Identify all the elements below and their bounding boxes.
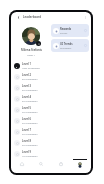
button[interactable]: Level 3 [14,82,89,93]
button[interactable]: Level 9 [14,148,89,159]
staticText: Level 2 [22,73,32,77]
button[interactable]: Home [14,159,30,166]
button[interactable]: Profile [72,159,88,166]
staticText: 4% of members [22,111,38,114]
staticText: 2% of members [22,144,38,147]
staticText: Rewards [60,27,72,31]
staticText: 5% of members [22,100,38,103]
staticText: In progress [60,47,72,50]
staticText: 8% of members [22,78,38,81]
button[interactable]: Level 6 [14,115,89,126]
button[interactable]: Saved [53,159,69,166]
staticText: Level 6 [22,117,32,121]
staticText: 320 pts [60,32,68,35]
button[interactable]: More options [83,15,88,20]
staticText: Level 4 [22,95,32,99]
button[interactable]: Level 2 [14,71,89,82]
staticText: Level 5 [22,106,32,110]
button[interactable]: Back [16,15,21,20]
staticText: 2% of members [22,133,38,136]
staticText: UI Trends [60,42,73,46]
staticText: Level 1 [22,62,32,66]
staticText: 3% of members [22,122,38,125]
button[interactable]: Level 7 [14,126,89,137]
staticText: 100% of members [22,67,40,70]
staticText: Level 9 [22,150,32,154]
staticText: Level 8 [22,139,32,143]
button[interactable]: Level 8 [14,137,89,148]
staticText: Milena Stefanis [21,48,42,52]
staticText: 6% of members [22,89,38,92]
staticText: 1 [16,65,18,68]
button[interactable]: 1 [14,60,89,71]
button[interactable]: Level 5 [14,104,89,115]
staticText: Level 1 [27,53,35,56]
staticText: Level 3 [22,84,32,88]
staticText: 1% of members [22,155,38,158]
button[interactable]: UI Trends [51,39,89,52]
staticText: Leaderboard [23,15,42,19]
button[interactable]: Level 4 [14,93,89,104]
button[interactable]: Search [33,159,49,166]
button[interactable]: Rewards [51,24,89,37]
staticText: Level 7 [22,128,32,132]
